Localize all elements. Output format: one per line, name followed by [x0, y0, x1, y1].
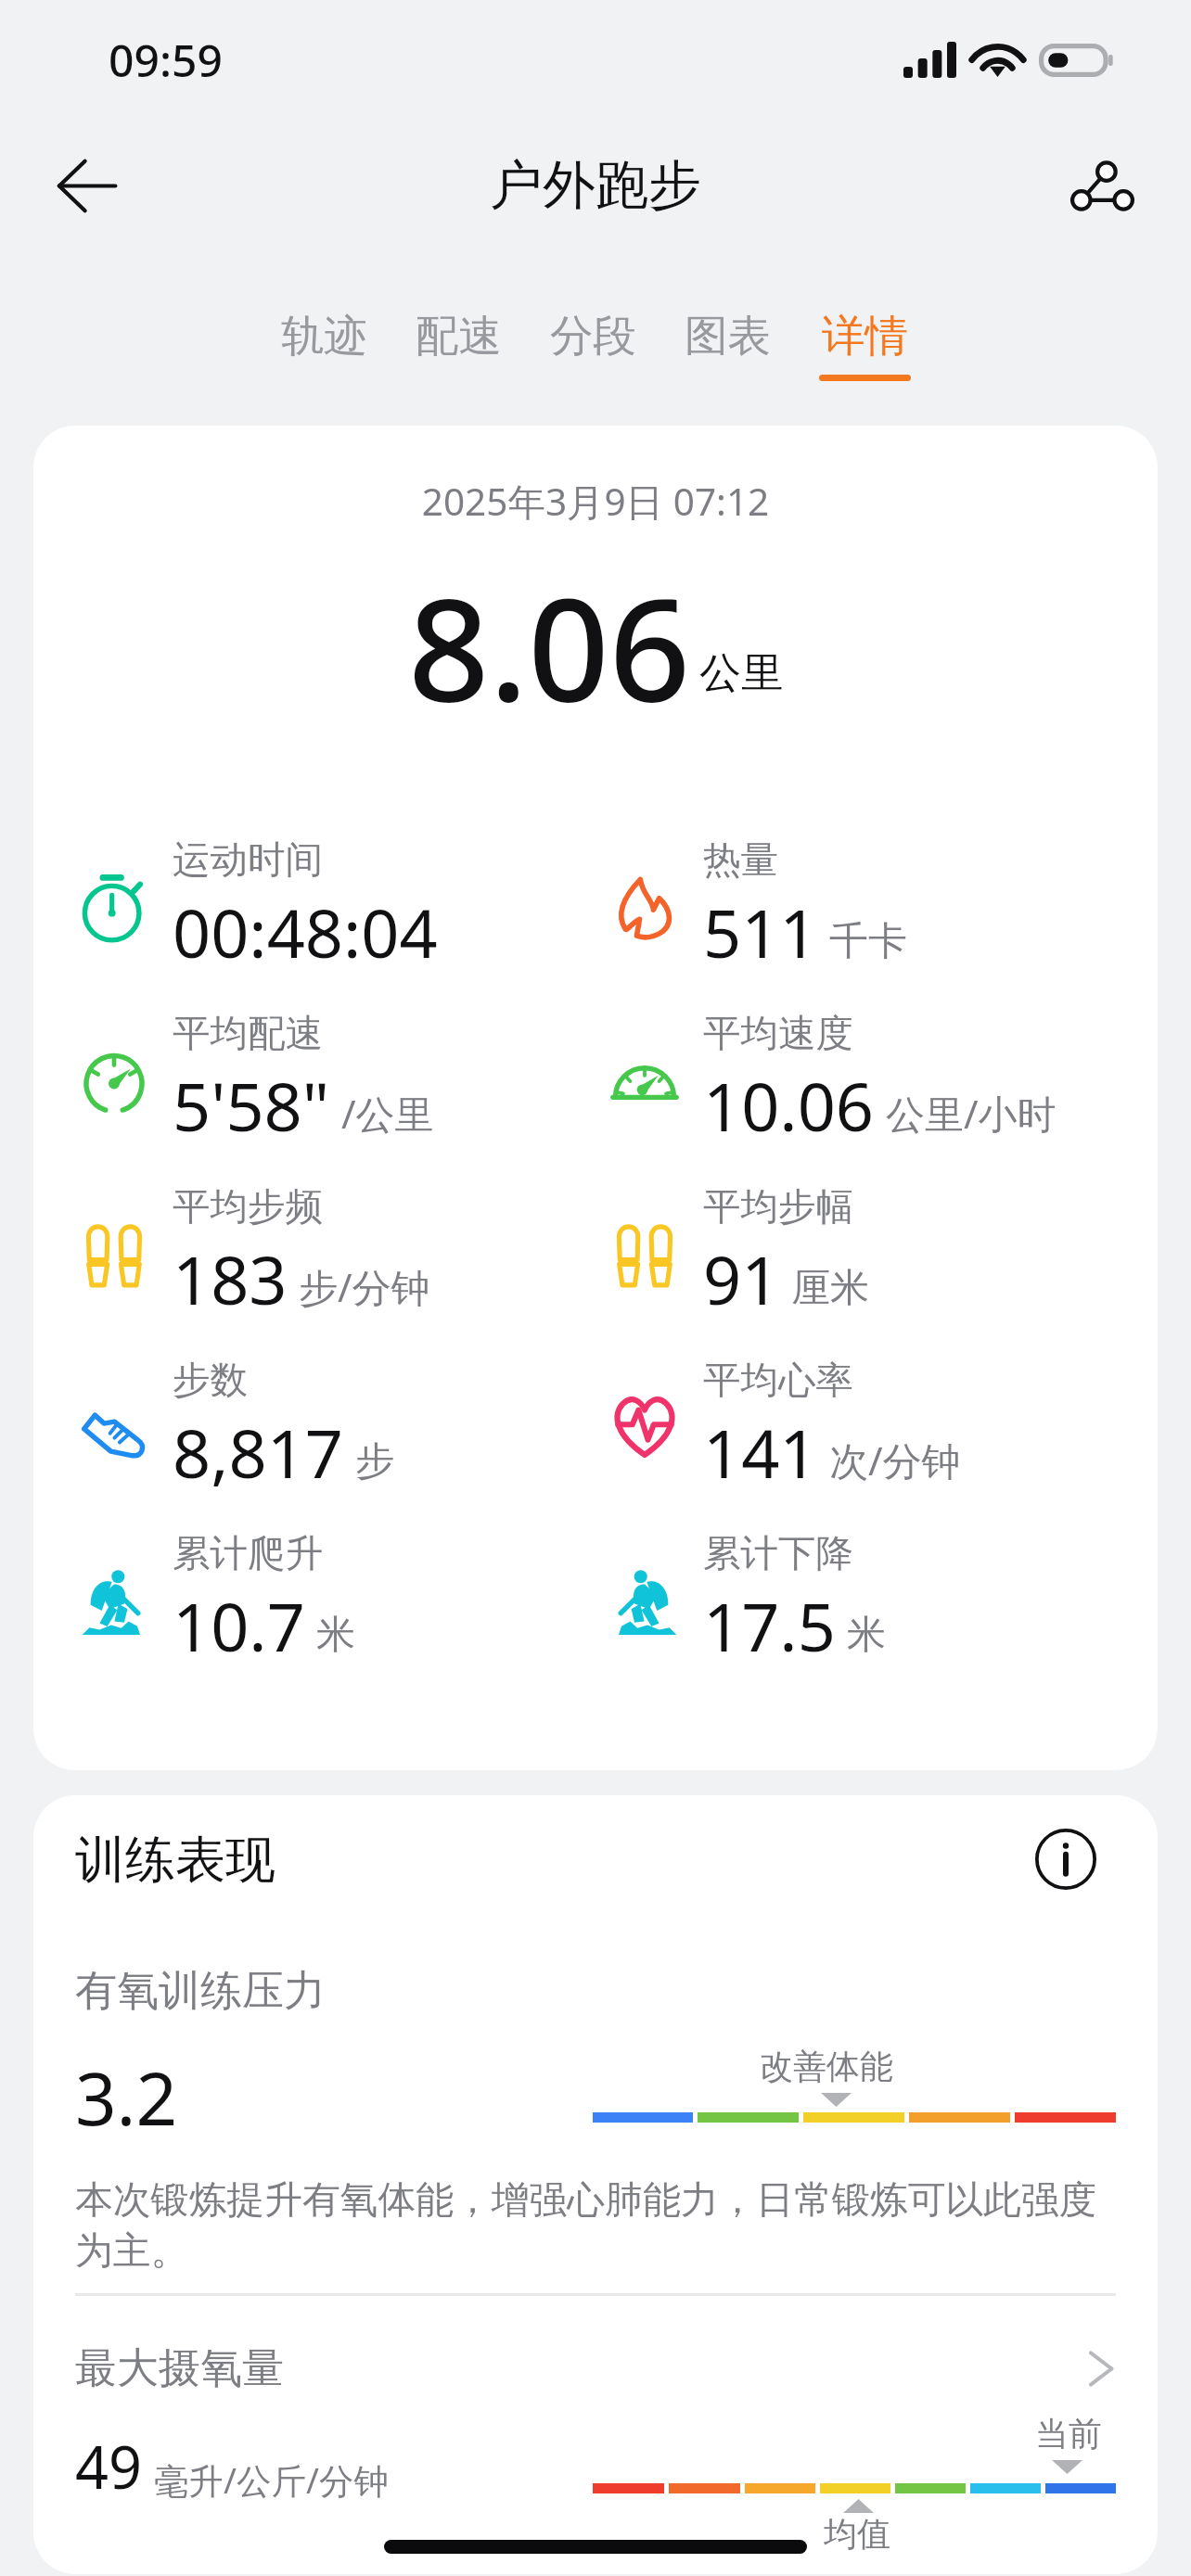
staticText: 公里 [699, 647, 783, 700]
staticText: 均值 [824, 2513, 890, 2555]
staticText: 511 [703, 886, 818, 977]
staticText: 配速 [416, 309, 502, 363]
staticText: /公里 [341, 1087, 434, 1140]
button[interactable]: 图表 [685, 309, 771, 375]
staticText: 毫升/公斤/分钟 [154, 2456, 389, 2504]
staticText: 步数 [173, 1357, 248, 1404]
button[interactable]: 详情 [819, 309, 911, 381]
staticText: 详情 [822, 309, 908, 363]
staticText: 当前 [1035, 2413, 1102, 2455]
staticText: 平均步幅 [703, 1183, 853, 1231]
staticText: 轨迹 [281, 309, 367, 363]
staticText: 3.2 [75, 2048, 178, 2147]
staticText: 最大摄氧量 [75, 2342, 284, 2395]
staticText: 公里/小时 [886, 1087, 1057, 1140]
staticText: 米 [316, 1611, 355, 1660]
staticText: 10.06 [703, 1060, 875, 1151]
staticText: 千卡 [829, 917, 907, 966]
staticText: 运动时间 [173, 836, 323, 884]
staticText: 183 [173, 1233, 288, 1324]
staticText: 00:48:04 [173, 886, 438, 977]
button[interactable]: 最大摄氧量 [75, 2332, 1116, 2404]
staticText: 141 [703, 1407, 818, 1498]
staticText: 平均速度 [703, 1010, 853, 1057]
button[interactable]: Info [1024, 1817, 1108, 1901]
staticText: 累计下降 [703, 1530, 853, 1577]
staticText: 平均配速 [173, 1010, 323, 1057]
staticText: 2025年3月9日 07:12 [33, 476, 1158, 527]
staticText: 步 [355, 1437, 394, 1486]
staticText: 5'58" [173, 1060, 330, 1151]
staticText: 本次锻炼提升有氧体能，增强心肺能力，日常锻炼可以此强度为主。 [75, 2176, 1116, 2276]
staticText: 17.5 [703, 1580, 836, 1671]
staticText: 热量 [703, 836, 778, 884]
staticText: 49 [75, 2427, 143, 2506]
staticText: 平均步频 [173, 1183, 323, 1231]
staticText: 91 [703, 1233, 780, 1324]
staticText: 8.06 [408, 549, 691, 742]
staticText: 次/分钟 [829, 1434, 961, 1486]
button[interactable]: 配速 [416, 309, 502, 375]
staticText: 累计爬升 [173, 1530, 323, 1577]
staticText: 分段 [550, 309, 636, 363]
staticText: 米 [847, 1611, 886, 1660]
button[interactable]: 分段 [550, 309, 636, 375]
button[interactable]: Back [28, 127, 145, 244]
staticText: 10.7 [173, 1580, 305, 1671]
button[interactable]: Share [1044, 127, 1160, 244]
staticText: 厘米 [791, 1264, 869, 1313]
staticText: 09:59 [109, 30, 223, 90]
staticText: 改善体能 [760, 2046, 893, 2087]
staticText: 户外跑步 [490, 152, 701, 219]
staticText: 有氧训练压力 [75, 1965, 326, 2018]
staticText: 图表 [685, 309, 771, 363]
staticText: 训练表现 [75, 1829, 275, 1892]
staticText: 8,817 [173, 1407, 344, 1498]
staticText: 步/分钟 [299, 1260, 430, 1313]
button[interactable]: 轨迹 [281, 309, 367, 375]
staticText: 平均心率 [703, 1357, 853, 1404]
